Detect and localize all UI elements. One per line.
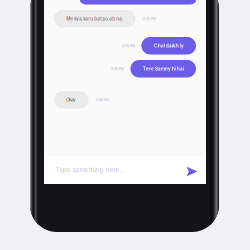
staticText: Tere Samny hi hai: [143, 66, 184, 72]
staticText: Okay: [66, 97, 76, 102]
staticText: 3:30 PM: [121, 43, 134, 48]
staticText: 3:30 PM: [143, 16, 156, 21]
staticText: 3:30 PM: [110, 66, 123, 71]
button[interactable]: Send: [182, 155, 202, 185]
staticText: Type something here...: [55, 166, 125, 174]
staticText: 3:30 PM: [96, 97, 109, 102]
staticText: Chal daikh ly: [154, 43, 184, 49]
staticText: Me kya karu batao ab na.: [66, 16, 123, 21]
